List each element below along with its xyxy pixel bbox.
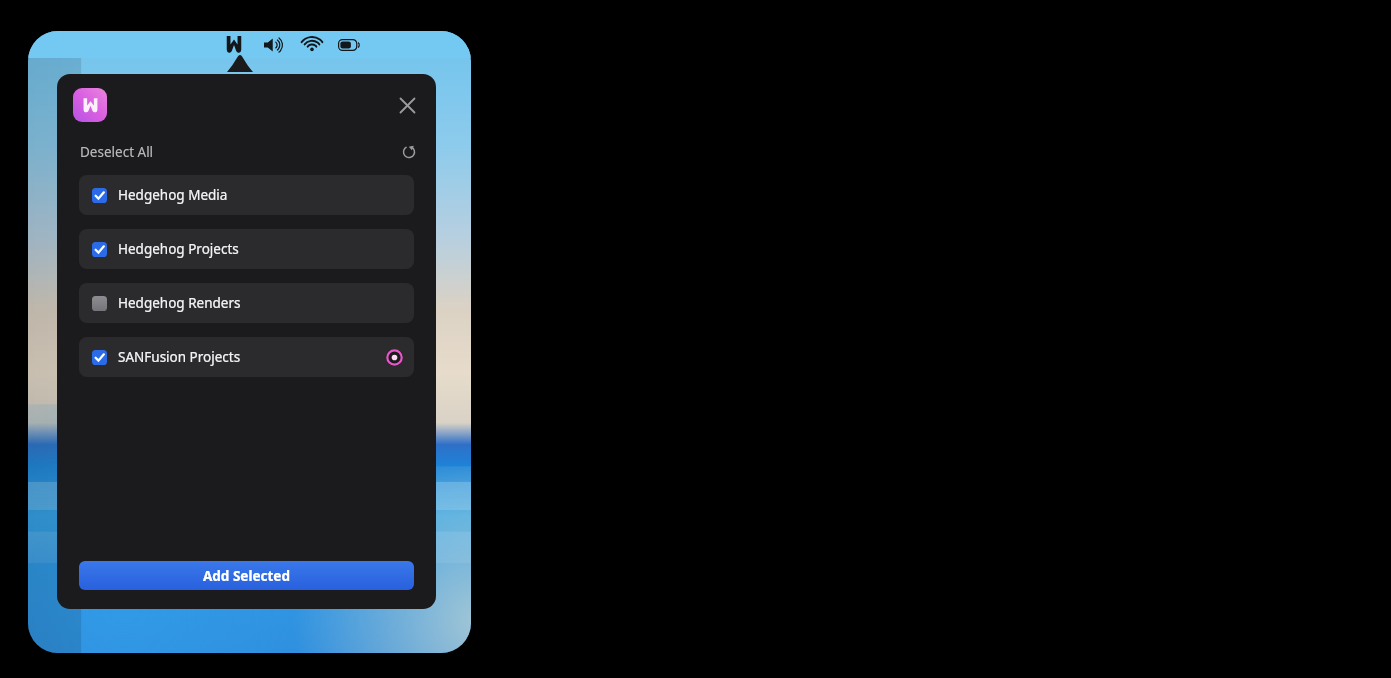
button[interactable]: Volume [262,32,284,57]
button[interactable]: Hedgehog Media [79,175,414,215]
button[interactable]: App icon [73,88,107,122]
button[interactable]: Wi-Fi [301,32,323,57]
button[interactable]: Close [390,88,424,122]
button[interactable]: Battery [338,32,360,57]
button[interactable]: Hedgehog Projects [79,229,414,269]
button[interactable]: Deselect All [79,141,155,163]
staticText: Hedgehog Renders [118,294,241,312]
button[interactable]: Hedgehog Renders [79,283,414,323]
staticText: Deselect All [80,143,154,161]
staticText: Hedgehog Media [118,186,228,204]
staticText: Hedgehog Projects [118,240,239,258]
button[interactable]: App menu bar icon [223,32,245,57]
staticText: SANFusion Projects [118,348,241,366]
staticText: Add Selected [203,567,290,585]
button[interactable]: SANFusion Projects [79,337,414,377]
button[interactable]: Add Selected [79,561,414,590]
button[interactable]: Refresh [396,139,422,165]
button[interactable]: Project status [385,348,403,366]
